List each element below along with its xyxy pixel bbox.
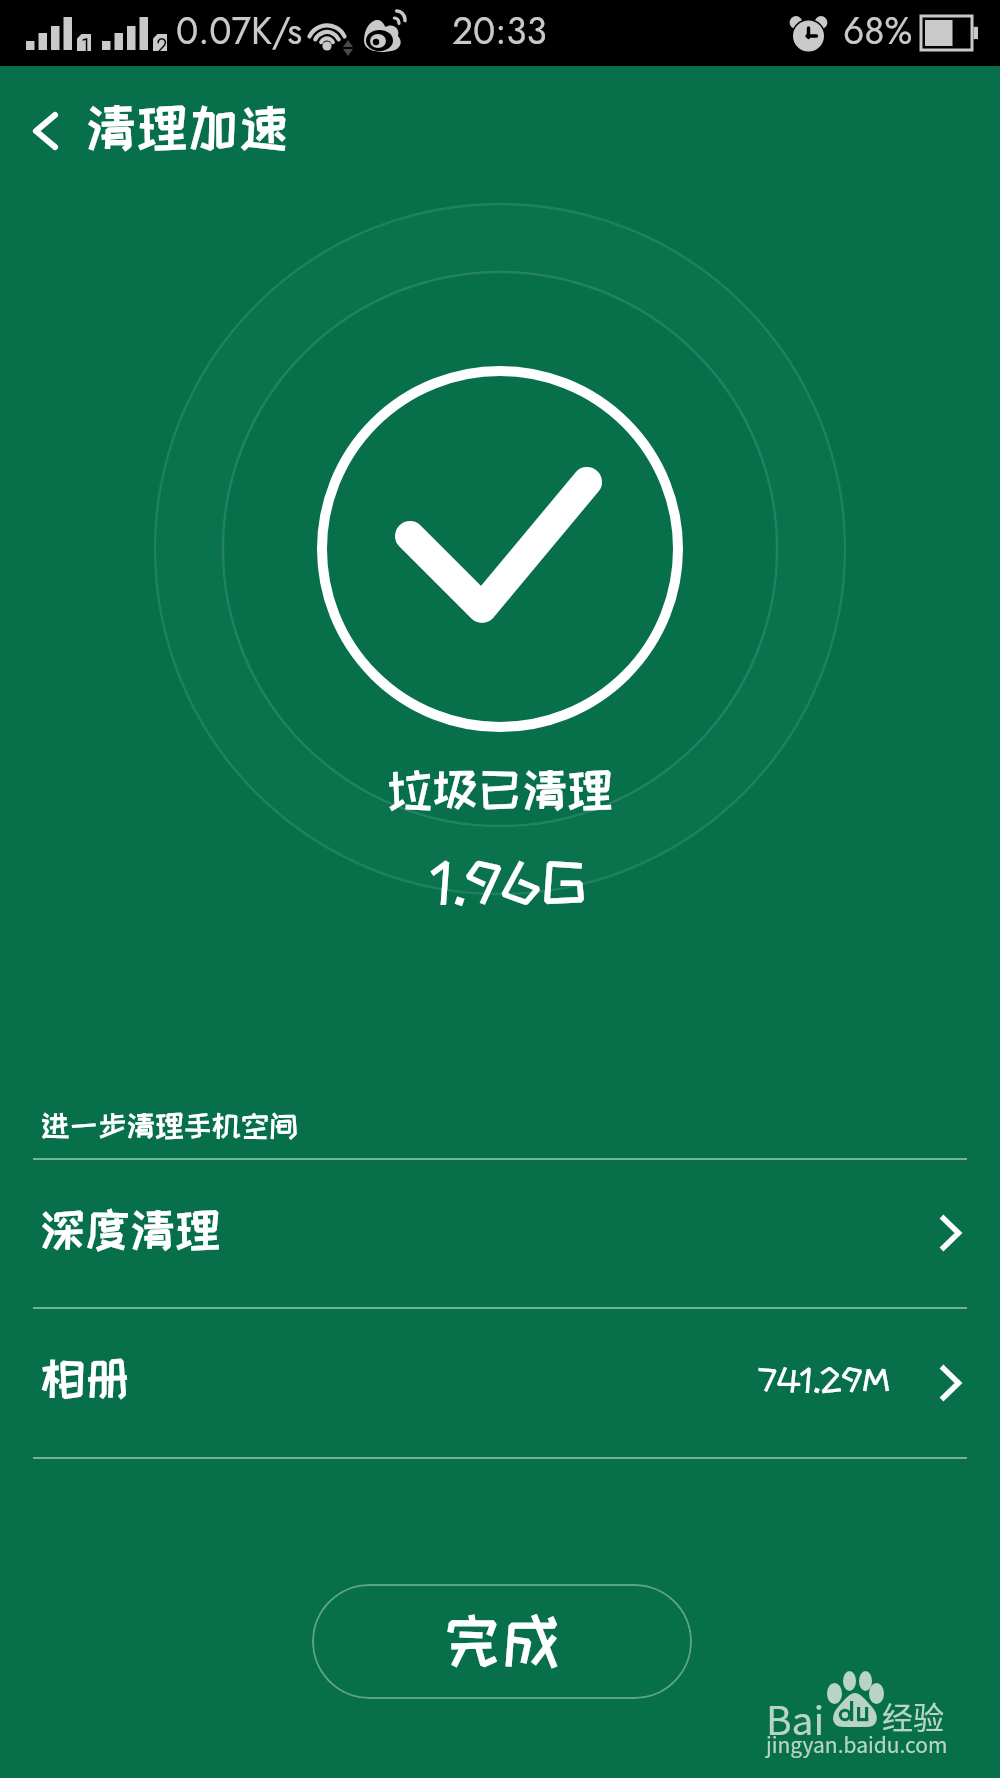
staticText: Bai — [766, 1690, 825, 1746]
staticText: 2 — [156, 32, 168, 61]
staticText: 垃圾已清理 — [0, 765, 1000, 814]
staticText: 1 — [81, 32, 90, 61]
staticText: 1.96G — [9, 852, 1000, 911]
staticText: jingyan.baidu.com — [766, 1729, 948, 1759]
staticText: 清理加速 — [86, 100, 289, 155]
staticText: 20:33 — [452, 4, 547, 57]
staticText: 经验 — [882, 1693, 944, 1738]
staticText: 进一步清理手机空间 — [41, 1110, 298, 1141]
button[interactable]: 相册 — [0, 1304, 1000, 1453]
button[interactable]: 深度清理 — [0, 1155, 1000, 1303]
staticText: 完成 — [443, 1608, 561, 1672]
staticText: 68% — [843, 4, 913, 57]
button[interactable]: Back — [10, 98, 78, 164]
staticText: 741.29M — [759, 1362, 891, 1396]
button[interactable]: 完成 — [312, 1584, 692, 1699]
staticText: 相册 — [40, 1354, 131, 1403]
staticText: 0.07K/s — [176, 4, 303, 57]
staticText: 深度清理 — [40, 1205, 221, 1254]
